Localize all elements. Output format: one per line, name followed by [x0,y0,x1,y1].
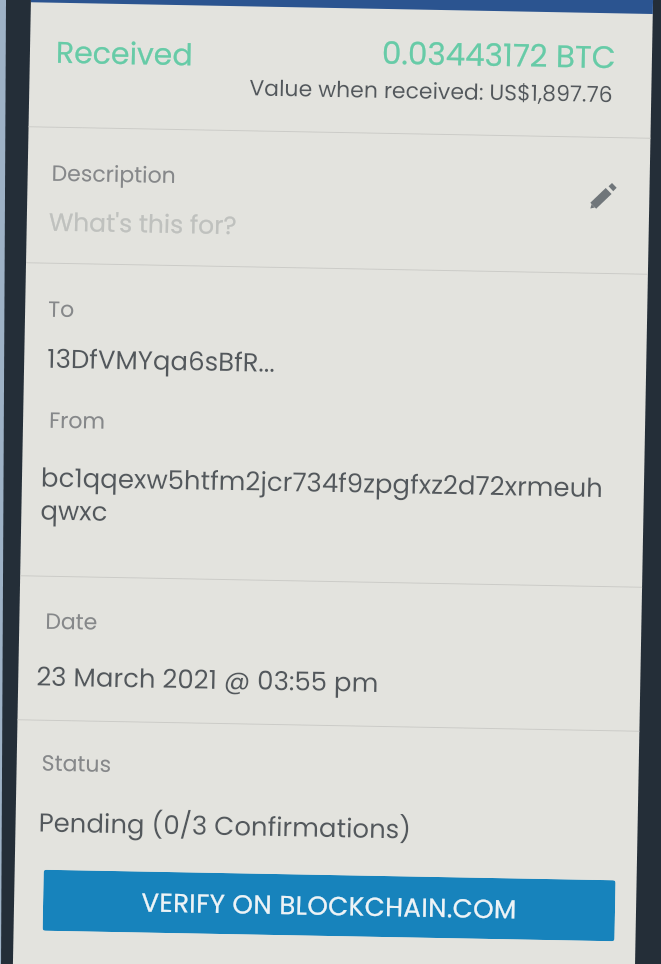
staticText: Description [51,158,177,191]
staticText: bc1qqexw5htfm2jcr734f9zpgfxz2d72xrmeuh q… [40,459,603,539]
staticText: 0.03443172 BTC [382,31,616,78]
button[interactable]: VERIFY ON BLOCKCHAIN.COM [43,870,616,941]
staticText: Date [45,606,99,638]
staticText: Status [41,748,112,780]
staticText: Value when received: US$1,897.76 [249,72,613,110]
staticText: From [49,405,106,437]
staticText: VERIFY ON BLOCKCHAIN.COM [141,884,517,927]
staticText: Pending (0/3 Confirmations) [38,805,412,848]
staticText: 13DfVMYqa6sBfR... [47,341,275,381]
staticText: 23 March 2021 @ 03:55 pm [36,658,380,701]
button[interactable]: Edit description [572,166,633,227]
staticText: What's this for? [48,205,237,243]
staticText: Received [56,32,193,76]
staticText: To [48,294,74,325]
